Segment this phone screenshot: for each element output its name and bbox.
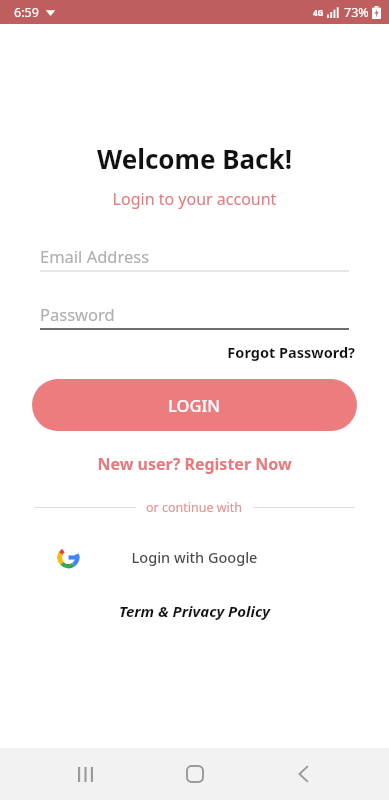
button[interactable]: Recents bbox=[61, 750, 109, 798]
button[interactable]: Back bbox=[280, 750, 328, 798]
staticText: or continue with bbox=[146, 499, 243, 516]
staticText: 6:59 bbox=[14, 4, 39, 21]
button[interactable]: New user? Register Now bbox=[0, 453, 389, 475]
button[interactable]: Password bbox=[40, 299, 349, 332]
staticText: Login to your account bbox=[0, 188, 389, 210]
button[interactable]: Google bbox=[46, 537, 343, 577]
staticText: Email Address bbox=[40, 245, 150, 267]
staticText: 73% bbox=[344, 4, 369, 21]
button[interactable]: Forgot Password? bbox=[0, 342, 355, 362]
button[interactable]: Home bbox=[171, 750, 219, 798]
staticText: Password bbox=[40, 303, 115, 325]
staticText: Welcome Back! bbox=[0, 141, 389, 176]
staticText: LOGIN bbox=[168, 394, 221, 416]
staticText: 4G bbox=[313, 7, 324, 18]
button[interactable]: Term & Privacy Policy bbox=[0, 601, 389, 621]
button[interactable]: Email Address bbox=[40, 241, 349, 274]
button[interactable]: LOGIN bbox=[32, 379, 357, 431]
staticText: Login with Google bbox=[78, 547, 311, 567]
other: Google bbox=[59, 548, 78, 567]
